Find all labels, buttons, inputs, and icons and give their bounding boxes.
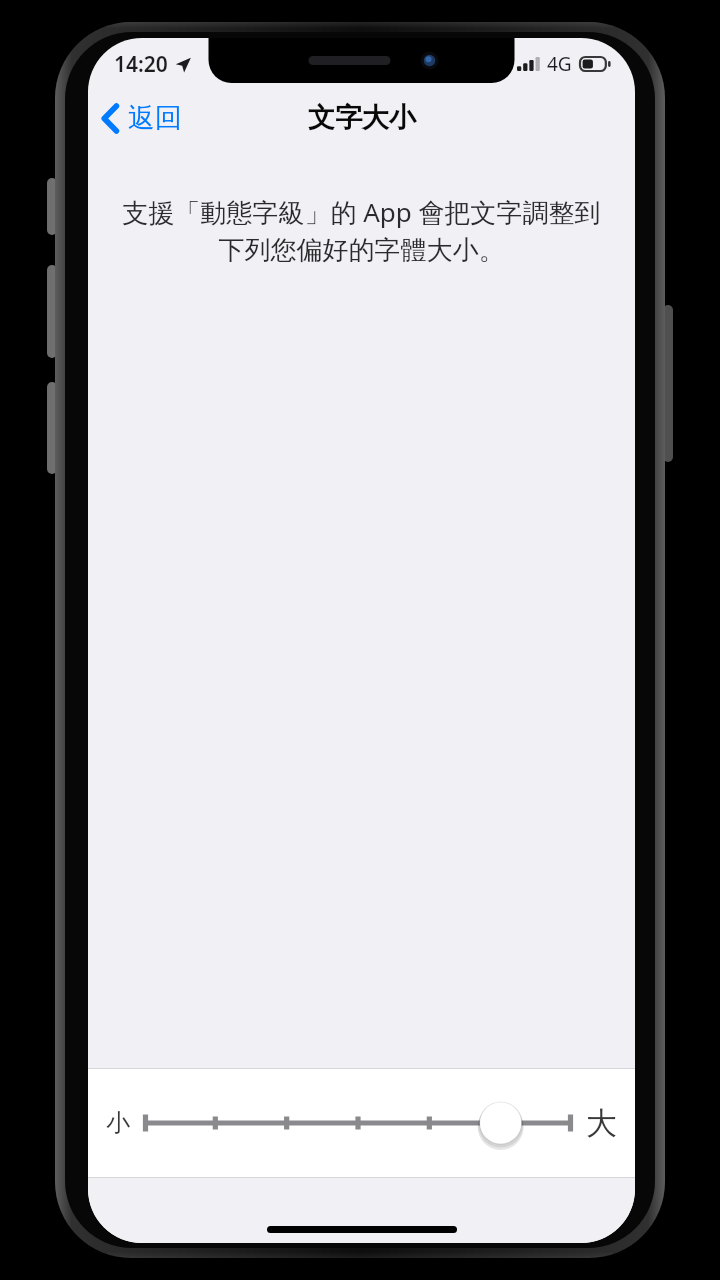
staticText: 4G — [547, 51, 572, 77]
staticText: 支援「動態字級」的 App 會把文字調整到下列您偏好的字體大小。 — [112, 194, 611, 266]
staticText: 14:20 — [114, 50, 168, 79]
staticText: 文字大小 — [308, 101, 416, 135]
button[interactable]: 返回 — [88, 95, 196, 141]
staticText: 小 — [106, 1108, 130, 1138]
staticText: 返回 — [128, 101, 182, 135]
button[interactable]: 文字大小滑桿 — [88, 1069, 635, 1177]
staticText: 大 — [586, 1104, 617, 1143]
